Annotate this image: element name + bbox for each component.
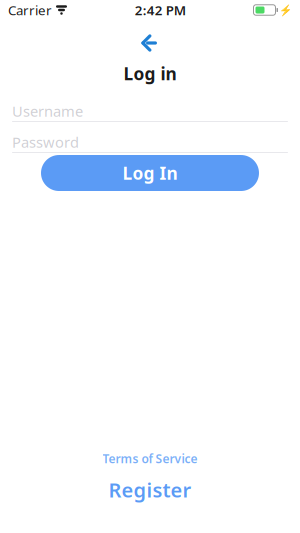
button[interactable]: Terms of Service (94, 448, 205, 468)
staticText: Log in (123, 62, 176, 85)
staticText: Terms of Service (102, 450, 197, 466)
staticText: Carrier (8, 1, 52, 19)
button[interactable]: Register (98, 474, 201, 505)
staticText: Password (12, 132, 79, 152)
staticText: 2:42 PM (135, 1, 186, 19)
button[interactable]: Log In (41, 155, 259, 191)
staticText: Log In (122, 161, 177, 184)
staticText: Username (12, 101, 83, 121)
button[interactable]: Back (128, 28, 172, 58)
staticText: ⚡ (279, 4, 292, 16)
staticText: Register (108, 476, 191, 503)
